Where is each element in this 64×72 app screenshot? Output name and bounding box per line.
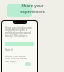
button[interactable]: Submit (25, 62, 31, 66)
staticText: Share your experiences (20, 3, 45, 14)
staticText: Rate it (5, 48, 13, 52)
staticText: Tell us a bit about your visit so others… (5, 54, 28, 63)
staticText: Have you tried a new experience with a m… (5, 26, 32, 38)
button[interactable] (5, 42, 34, 46)
